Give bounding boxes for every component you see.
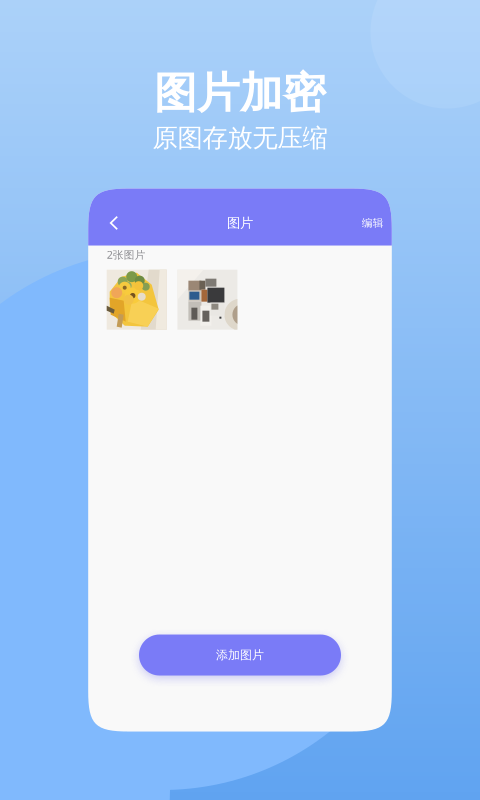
staticText: 原图存放无压缩 [152,122,327,153]
button[interactable]: Back [88,203,129,243]
staticText: 2张图片 [107,247,146,262]
staticText: 编辑 [362,216,384,230]
button[interactable]: Photo 2 [177,270,237,330]
staticText: 添加图片 [216,648,264,662]
button[interactable]: 编辑 [362,203,392,243]
button[interactable]: 添加图片 [139,634,341,675]
staticText: 图片 [227,215,253,231]
staticText: 图片加密 [154,67,326,119]
button[interactable]: Photo 1 [107,270,167,330]
